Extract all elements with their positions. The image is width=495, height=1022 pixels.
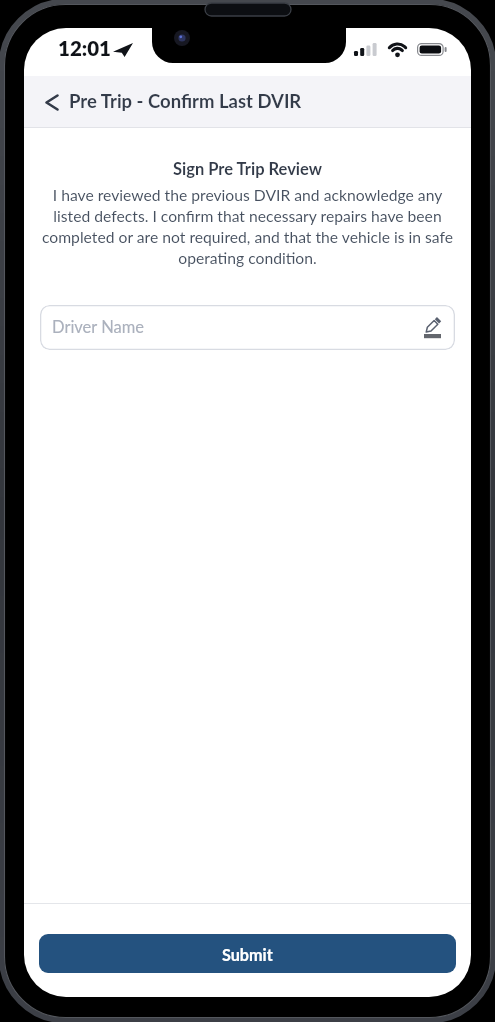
staticText: I have reviewed the previous DVIR and ac… xyxy=(24,186,471,267)
staticText: Pre Trip - Confirm Last DVIR xyxy=(69,90,302,112)
staticText: Driver Name xyxy=(52,317,145,337)
button[interactable]: Driver Name xyxy=(40,305,455,350)
button[interactable]: Submit xyxy=(39,934,456,973)
staticText: Submit xyxy=(222,945,273,964)
staticText: 12:01 xyxy=(58,36,111,61)
staticText: Sign Pre Trip Review xyxy=(24,159,471,179)
button[interactable] xyxy=(32,82,72,122)
